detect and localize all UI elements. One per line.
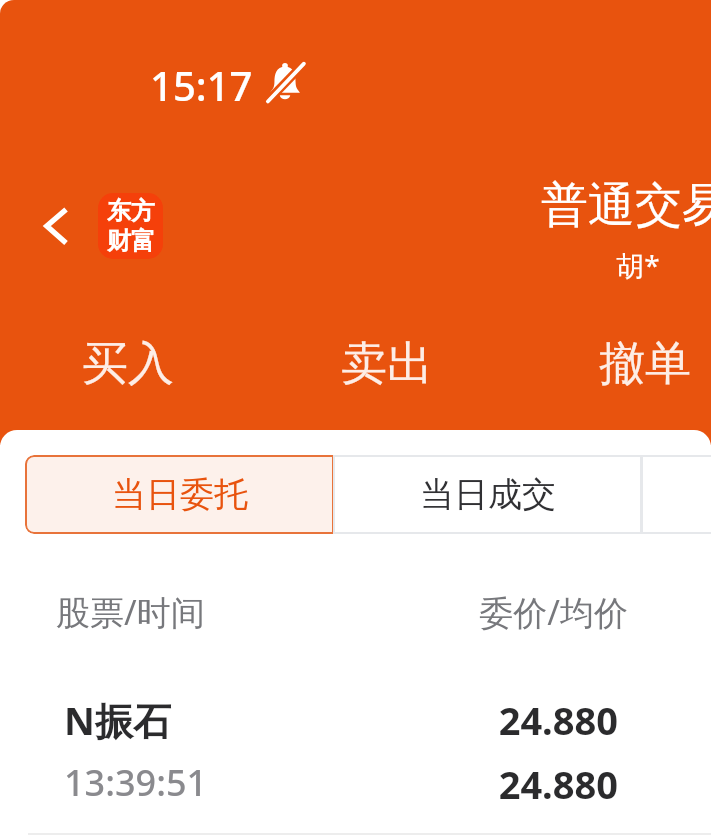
button[interactable] (641, 455, 711, 534)
staticText: 24.880 (278, 694, 618, 746)
button[interactable]: 撤单 (570, 326, 711, 402)
other: Silent mode (263, 61, 307, 105)
staticText: 股票/时间 (56, 589, 205, 635)
button[interactable]: 东方 (98, 193, 163, 259)
staticText: 24.880 (278, 758, 618, 810)
staticText: 13:39:51 (64, 758, 208, 807)
staticText: 买入 (82, 335, 174, 393)
staticText: 撤单 (599, 335, 691, 393)
staticText: 卖出 (341, 335, 433, 393)
button[interactable]: 当日成交 (333, 455, 642, 534)
button[interactable]: N振石 (0, 685, 711, 833)
button[interactable]: Back (22, 192, 90, 260)
button[interactable]: 卖出 (312, 326, 462, 402)
staticText: 财富 (107, 226, 155, 256)
staticText: 普通交易 (541, 176, 711, 235)
button[interactable]: 当日委托 (25, 455, 334, 534)
button[interactable]: 买入 (53, 326, 203, 402)
staticText: 委价/均价 (288, 589, 628, 635)
staticText: 15:17 (150, 58, 253, 112)
staticText: 东方 (107, 196, 155, 226)
staticText: N振石 (64, 694, 171, 746)
staticText: 胡* (540, 246, 711, 284)
staticText: 当日成交 (420, 473, 556, 516)
staticText: 当日委托 (112, 473, 248, 516)
